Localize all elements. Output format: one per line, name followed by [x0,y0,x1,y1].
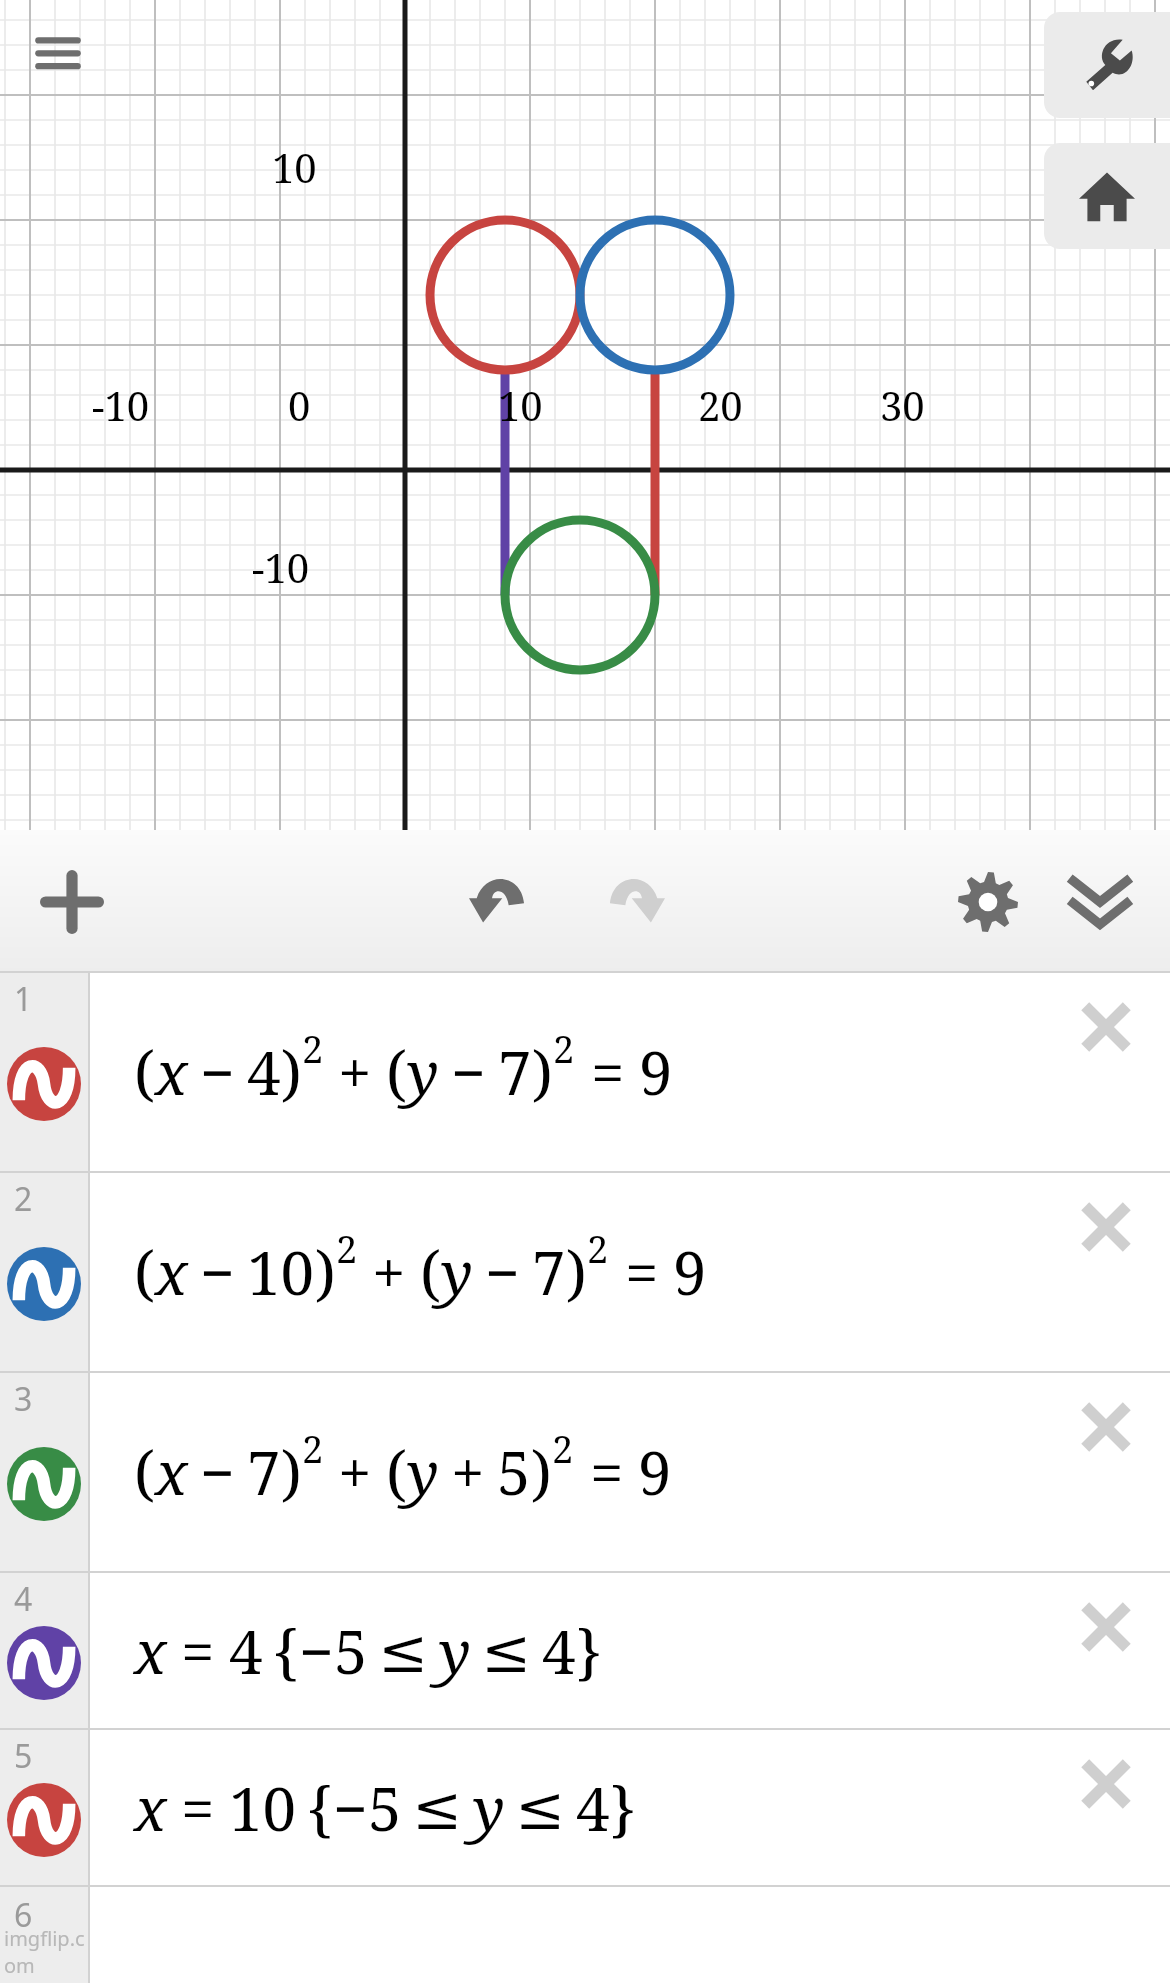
staticText: ( [134,1031,155,1113]
staticText: ) [532,1031,553,1113]
button[interactable]: 1 [0,973,1170,1171]
staticText: 5 [368,1767,402,1849]
staticText: x [155,1231,188,1313]
staticText: − [200,1431,235,1513]
staticText: = [181,1610,215,1692]
staticText: 30 [880,378,925,432]
staticText: ) [281,1431,302,1513]
staticText: 7 [247,1431,281,1513]
staticText: imgflip.com [4,1925,88,1979]
staticText: } [576,1610,602,1692]
button[interactable]: Settings [1044,12,1170,118]
staticText: ( [420,1231,441,1313]
staticText: + [338,1031,372,1113]
staticText: 2 [302,1422,324,1474]
staticText: y [407,1431,439,1513]
staticText: ( [134,1231,155,1313]
staticText: 0 [288,378,311,432]
staticText: = [181,1767,215,1849]
staticText: ) [566,1231,587,1313]
staticText: ) [281,1031,302,1113]
staticText: 4 [247,1031,281,1113]
staticText: 6 [14,1893,33,1937]
staticText: 7 [498,1031,532,1113]
staticText: 4 [229,1610,263,1692]
staticText: ( [386,1431,407,1513]
staticText: ) [315,1231,336,1313]
staticText: ( [134,1431,155,1513]
staticText: + [451,1431,485,1513]
staticText: y [441,1231,473,1313]
staticText: x [134,1610,167,1692]
staticText: 10 [247,1231,315,1313]
staticText: 2 [587,1222,609,1274]
staticText: x [134,1767,167,1849]
staticText: 2 [553,1022,575,1074]
staticText: 2 [336,1222,358,1274]
staticText: − [333,1767,368,1849]
staticText: x [155,1031,188,1113]
staticText: 10 [498,378,543,432]
button[interactable]: Redo [577,830,689,973]
staticText: 3 [14,1377,33,1421]
staticText: = [591,1031,625,1113]
staticText: + [338,1431,372,1513]
staticText: 2 [552,1422,574,1474]
button[interactable]: 3 [0,1373,1170,1571]
button[interactable]: Graph settings [932,830,1044,973]
staticText: ≤ [515,1773,566,1843]
staticText: − [299,1610,334,1692]
staticText: 20 [698,378,743,432]
staticText: y [439,1610,471,1692]
button[interactable]: Home [1044,143,1170,249]
staticText: 4 [542,1610,576,1692]
staticText: { [307,1767,333,1849]
staticText: x [155,1431,188,1513]
button[interactable]: 2 [0,1173,1170,1371]
staticText: -10 [92,378,150,432]
button[interactable]: 6 [0,1887,1170,1983]
staticText: 4 [14,1577,33,1621]
button[interactable]: Collapse list [1044,830,1156,973]
button[interactable]: Delete expression [1078,999,1134,1055]
staticText: 9 [639,1031,673,1113]
staticText: 7 [532,1231,566,1313]
staticText: ( [386,1031,407,1113]
staticText: − [451,1031,486,1113]
staticText: -10 [252,540,310,594]
button[interactable]: Delete expression [1078,1199,1134,1255]
staticText: 4 [576,1767,610,1849]
button[interactable]: Undo [445,830,557,973]
staticText: − [485,1231,520,1313]
button[interactable]: Add expression [16,830,128,973]
staticText: = [625,1231,659,1313]
staticText: ≤ [481,1616,532,1686]
staticText: 1 [14,977,33,1021]
button[interactable]: 5 [0,1730,1170,1885]
staticText: 5 [334,1610,368,1692]
staticText: ≤ [378,1616,429,1686]
staticText: } [610,1767,636,1849]
staticText: ) [531,1431,552,1513]
staticText: 9 [673,1231,707,1313]
staticText: − [200,1031,235,1113]
staticText: y [407,1031,439,1113]
staticText: 2 [14,1177,33,1221]
button[interactable]: Menu [20,16,96,92]
button[interactable]: 4 [0,1573,1170,1728]
staticText: ≤ [412,1773,463,1843]
staticText: = [590,1431,624,1513]
staticText: 10 [272,140,317,194]
staticText: 5 [497,1431,531,1513]
button[interactable]: Delete expression [1078,1399,1134,1455]
staticText: { [273,1610,299,1692]
staticText: 2 [302,1022,324,1074]
staticText: 5 [14,1734,33,1778]
staticText: + [372,1231,406,1313]
staticText: 9 [638,1431,672,1513]
button[interactable]: Delete expression [1078,1756,1134,1812]
staticText: y [473,1767,505,1849]
staticText: − [200,1231,235,1313]
button[interactable]: Delete expression [1078,1599,1134,1655]
staticText: 10 [229,1767,297,1849]
